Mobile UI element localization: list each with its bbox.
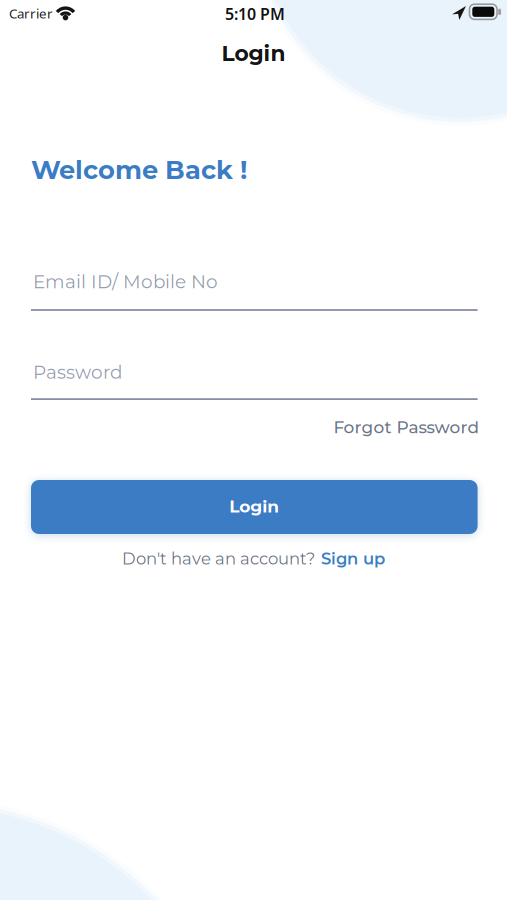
staticText: Email ID/ Mobile No bbox=[33, 270, 218, 293]
staticText: 5:10 PM bbox=[225, 3, 285, 24]
staticText: Sign up bbox=[321, 548, 385, 568]
staticText: Don't have an account? bbox=[122, 548, 315, 568]
staticText: Password bbox=[33, 361, 122, 383]
staticText: Login bbox=[229, 496, 279, 517]
staticText: Login bbox=[221, 40, 285, 66]
staticText: Forgot Password bbox=[333, 417, 479, 438]
staticText: Carrier bbox=[9, 4, 53, 22]
staticText: Welcome Back ! bbox=[31, 154, 247, 185]
